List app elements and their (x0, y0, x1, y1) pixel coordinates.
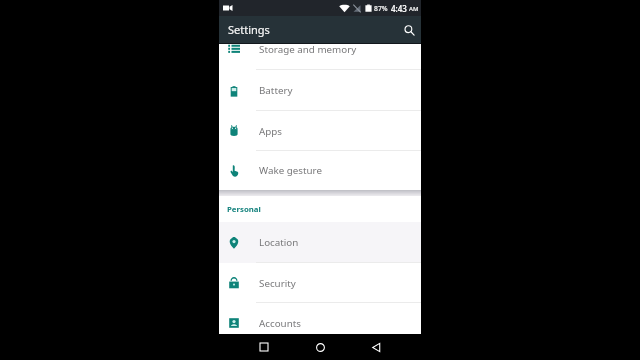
button[interactable]: Home (309, 336, 331, 358)
button[interactable]: Security (219, 263, 421, 303)
button[interactable]: Battery (219, 70, 421, 111)
staticText: Wake gesture (259, 164, 322, 177)
button[interactable]: Storage and memory (219, 29, 421, 70)
staticText: AM (409, 5, 419, 13)
staticText: Location (259, 236, 299, 249)
staticText: Settings (228, 22, 270, 37)
staticText: Accounts (259, 317, 301, 330)
button[interactable]: Back (365, 336, 387, 358)
button[interactable]: Apps (219, 111, 421, 151)
staticText: Battery (259, 84, 293, 97)
staticText: 87% (374, 4, 388, 13)
staticText: Apps (259, 125, 283, 138)
staticText: Personal (227, 204, 261, 215)
button[interactable]: Search (400, 21, 418, 39)
button[interactable]: Accounts (219, 303, 421, 343)
button[interactable]: Recent apps (253, 336, 275, 358)
staticText: Storage and memory (259, 43, 357, 56)
button[interactable]: Location (219, 222, 421, 263)
staticText: 4:43 (391, 3, 407, 14)
button[interactable]: Wake gesture (219, 151, 421, 190)
staticText: Security (259, 277, 296, 290)
